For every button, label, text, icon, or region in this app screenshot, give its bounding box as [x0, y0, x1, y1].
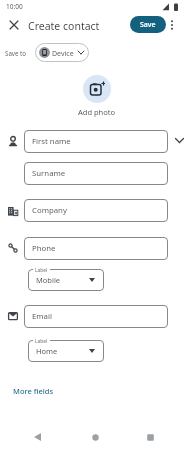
button[interactable] — [92, 434, 99, 441]
button[interactable] — [170, 20, 174, 30]
button[interactable]: Mobile — [28, 269, 104, 291]
button[interactable] — [147, 434, 154, 441]
staticText: Surname — [32, 168, 66, 179]
staticText: First name — [32, 136, 71, 147]
button[interactable] — [34, 433, 41, 441]
button[interactable] — [10, 21, 18, 29]
staticText: Create contact — [28, 19, 100, 33]
button[interactable]: First name — [24, 130, 168, 153]
button[interactable]: Email — [24, 305, 168, 328]
staticText: 10:00 — [6, 2, 23, 11]
button[interactable]: Home — [28, 340, 104, 362]
button[interactable]: Phone — [24, 237, 168, 260]
staticText: Device — [52, 49, 74, 59]
staticText: Label — [35, 267, 48, 274]
staticText: Add photo — [78, 107, 115, 117]
button[interactable] — [83, 75, 111, 103]
button[interactable]: Save — [130, 16, 166, 33]
staticText: Mobile — [36, 275, 61, 285]
staticText: Home — [36, 346, 58, 356]
button[interactable]: Device — [35, 43, 89, 62]
staticText: Save — [140, 20, 156, 30]
staticText: Save to — [5, 49, 27, 57]
button[interactable]: Company — [24, 199, 168, 222]
staticText: Label — [35, 338, 48, 345]
staticText: Company — [32, 205, 67, 216]
staticText: Phone — [32, 243, 56, 254]
button[interactable] — [175, 138, 184, 143]
staticText: Email — [32, 311, 53, 322]
button[interactable]: More fields — [13, 386, 54, 396]
button[interactable]: Surname — [24, 162, 168, 185]
